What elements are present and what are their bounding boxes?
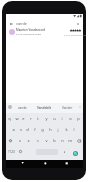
staticText: u xyxy=(53,116,56,121)
button[interactable]: Home xyxy=(41,160,49,168)
button[interactable]: m xyxy=(66,135,74,146)
staticText: l xyxy=(73,127,75,132)
button[interactable]: o xyxy=(66,113,74,124)
button[interactable]: c xyxy=(33,135,42,146)
button[interactable]: p xyxy=(74,113,82,124)
button[interactable]: Shift xyxy=(6,135,15,146)
button[interactable]: b xyxy=(50,135,58,146)
staticText: 2.195 thousand votes xyxy=(16,32,42,35)
staticText: c xyxy=(37,138,39,143)
button[interactable]: ?123 xyxy=(8,150,15,154)
button[interactable]: Clear xyxy=(74,20,82,27)
button[interactable]: Maarten Vandevoord xyxy=(6,28,83,40)
button[interactable]: k xyxy=(62,124,70,135)
staticText: y xyxy=(45,116,48,121)
staticText: r xyxy=(30,116,32,121)
staticText: m xyxy=(68,138,72,143)
staticText: q xyxy=(8,116,11,121)
button[interactable]: Back xyxy=(7,20,15,27)
button[interactable]: Vandebilt xyxy=(37,106,52,110)
button[interactable]: u xyxy=(50,113,58,124)
button[interactable]: Vander xyxy=(62,106,73,110)
button[interactable]: j xyxy=(54,124,62,135)
button[interactable]: h xyxy=(46,124,54,135)
staticText: k xyxy=(65,127,68,132)
staticText: b xyxy=(53,138,56,143)
button[interactable]: l xyxy=(70,124,78,135)
button[interactable]: x xyxy=(24,135,33,146)
button[interactable]: g xyxy=(38,124,46,135)
button[interactable]: vande xyxy=(18,106,27,110)
staticText: Maarten Vandevoord xyxy=(16,28,46,32)
staticText: v xyxy=(45,138,48,143)
button[interactable]: t xyxy=(34,113,42,124)
staticText: w xyxy=(15,116,19,121)
button[interactable]: i xyxy=(58,113,66,124)
staticText: vande xyxy=(16,21,27,26)
button[interactable]: z xyxy=(15,135,24,146)
button[interactable]: Search xyxy=(73,151,78,156)
staticText: e xyxy=(22,116,25,121)
staticText: f xyxy=(34,127,36,132)
button[interactable]: Period xyxy=(63,150,66,153)
button[interactable]: Back xyxy=(19,160,27,168)
button[interactable]: Emoji xyxy=(19,150,22,153)
button[interactable]: f xyxy=(31,124,38,135)
staticText: d xyxy=(26,127,29,132)
staticText: z xyxy=(19,138,21,143)
button[interactable]: y xyxy=(42,113,50,124)
staticText: o xyxy=(69,116,72,121)
button[interactable]: n xyxy=(58,135,66,146)
staticText: s xyxy=(20,127,22,132)
staticText: 3.421 thousand friends xyxy=(64,33,86,36)
button[interactable]: d xyxy=(24,124,31,135)
button[interactable]: Backspace xyxy=(74,135,83,146)
button[interactable]: e xyxy=(20,113,27,124)
staticText: n xyxy=(61,138,64,143)
staticText: h xyxy=(49,127,52,132)
staticText: j xyxy=(57,127,59,132)
button[interactable]: Back xyxy=(6,18,83,28)
staticText: p xyxy=(77,116,80,121)
button[interactable]: v xyxy=(42,135,50,146)
button[interactable]: w xyxy=(13,113,20,124)
staticText: i xyxy=(61,116,63,121)
staticText: t xyxy=(37,116,39,121)
button[interactable]: q xyxy=(6,113,13,124)
staticText: x xyxy=(27,138,30,143)
button[interactable]: s xyxy=(17,124,24,135)
button[interactable]: Recents xyxy=(63,160,71,168)
staticText: g xyxy=(41,127,44,132)
button[interactable]: Google xyxy=(8,105,12,109)
staticText: a xyxy=(12,127,15,132)
button[interactable]: a xyxy=(10,124,17,135)
button[interactable]: r xyxy=(27,113,34,124)
